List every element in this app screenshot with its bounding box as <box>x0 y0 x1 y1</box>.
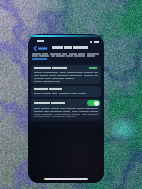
button[interactable] <box>31 65 101 84</box>
button[interactable]: Toggle <box>87 100 100 106</box>
button[interactable] <box>31 86 101 97</box>
button[interactable]: Back <box>32 45 49 52</box>
button[interactable]: Toggle <box>31 99 101 121</box>
